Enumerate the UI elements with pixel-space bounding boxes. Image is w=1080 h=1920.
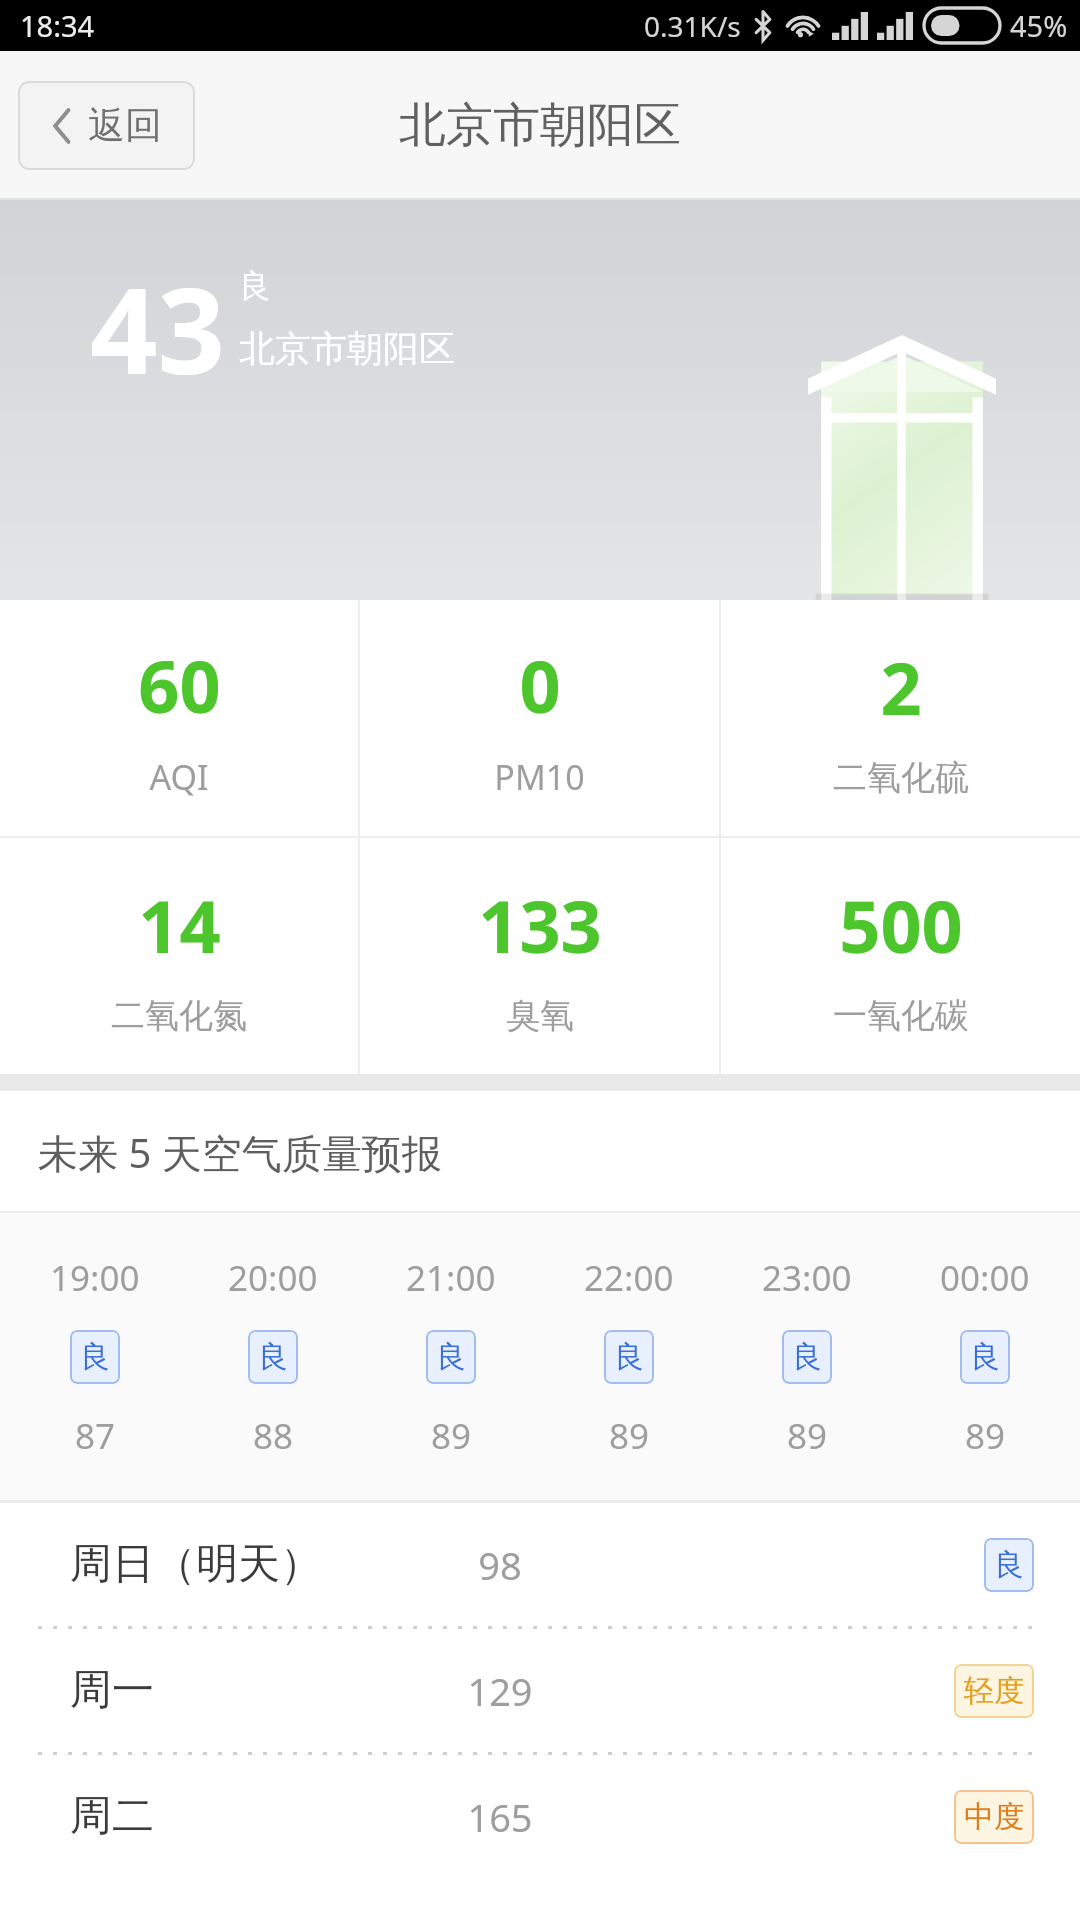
staticText: 未来 5 天空气质量预报 — [38, 1125, 442, 1180]
staticText: 0 — [519, 636, 561, 734]
button[interactable]: 2 — [721, 600, 1080, 836]
staticText: 北京市朝阳区 — [239, 326, 455, 371]
staticText: 良 — [80, 1338, 110, 1376]
staticText: 良 — [970, 1338, 1000, 1376]
staticText: 88 — [253, 1412, 294, 1460]
staticText: 中度 — [964, 1798, 1024, 1836]
button[interactable]: 返回 — [18, 81, 195, 170]
button[interactable]: 周日（明天） — [0, 1503, 1080, 1626]
staticText: 129 — [400, 1665, 600, 1717]
staticText: 一氧化碳 — [833, 994, 969, 1037]
staticText: 周二 — [70, 1790, 400, 1843]
button[interactable]: 19:00 — [6, 1213, 184, 1500]
button[interactable]: 14 — [0, 838, 358, 1074]
staticText: 43 — [90, 248, 225, 409]
staticText: 87 — [75, 1412, 116, 1460]
button[interactable]: 周一 — [0, 1629, 1080, 1752]
staticText: 45% — [1010, 6, 1068, 45]
button[interactable]: 0 — [360, 600, 719, 836]
staticText: 返回 — [88, 102, 162, 149]
staticText: 19:00 — [50, 1254, 140, 1302]
staticText: 臭氧 — [506, 994, 574, 1037]
button[interactable]: 500 — [721, 838, 1080, 1074]
staticText: 周日（明天） — [70, 1538, 400, 1591]
button[interactable]: 60 — [0, 600, 358, 836]
staticText: 89 — [787, 1412, 828, 1460]
staticText: 89 — [965, 1412, 1006, 1460]
staticText: 轻度 — [964, 1672, 1024, 1710]
staticText: 良 — [994, 1546, 1024, 1584]
staticText: 89 — [609, 1412, 650, 1460]
staticText: AQI — [149, 754, 209, 800]
button[interactable]: 133 — [360, 838, 719, 1074]
staticText: 良 — [258, 1338, 288, 1376]
staticText: 二氧化硫 — [833, 756, 969, 799]
staticText: 14 — [138, 876, 221, 974]
staticText: 良 — [614, 1338, 644, 1376]
staticText: 89 — [431, 1412, 472, 1460]
staticText: 二氧化氮 — [111, 994, 247, 1037]
staticText: 良 — [436, 1338, 466, 1376]
staticText: 北京市朝阳区 — [399, 96, 681, 155]
staticText: 500 — [839, 876, 963, 974]
staticText: 22:00 — [584, 1254, 674, 1302]
staticText: 60 — [138, 636, 221, 734]
staticText: 0.31K/s — [644, 7, 741, 45]
staticText: 周一 — [70, 1664, 400, 1717]
staticText: 良 — [239, 266, 271, 306]
button[interactable]: 23:00 — [718, 1213, 896, 1500]
button[interactable]: 周二 — [0, 1755, 1080, 1878]
staticText: 98 — [400, 1539, 600, 1591]
staticText: 21:00 — [406, 1254, 496, 1302]
staticText: 165 — [400, 1791, 600, 1843]
staticText: 23:00 — [762, 1254, 852, 1302]
staticText: 20:00 — [228, 1254, 318, 1302]
staticText: 良 — [792, 1338, 822, 1376]
staticText: PM10 — [494, 754, 585, 800]
staticText: 00:00 — [940, 1254, 1030, 1302]
staticText: 18:34 — [20, 6, 95, 45]
staticText: 2 — [880, 638, 922, 736]
button[interactable]: 21:00 — [362, 1213, 540, 1500]
staticText: 133 — [478, 876, 602, 974]
button[interactable]: 22:00 — [540, 1213, 718, 1500]
button[interactable]: 00:00 — [896, 1213, 1074, 1500]
button[interactable]: 20:00 — [184, 1213, 362, 1500]
